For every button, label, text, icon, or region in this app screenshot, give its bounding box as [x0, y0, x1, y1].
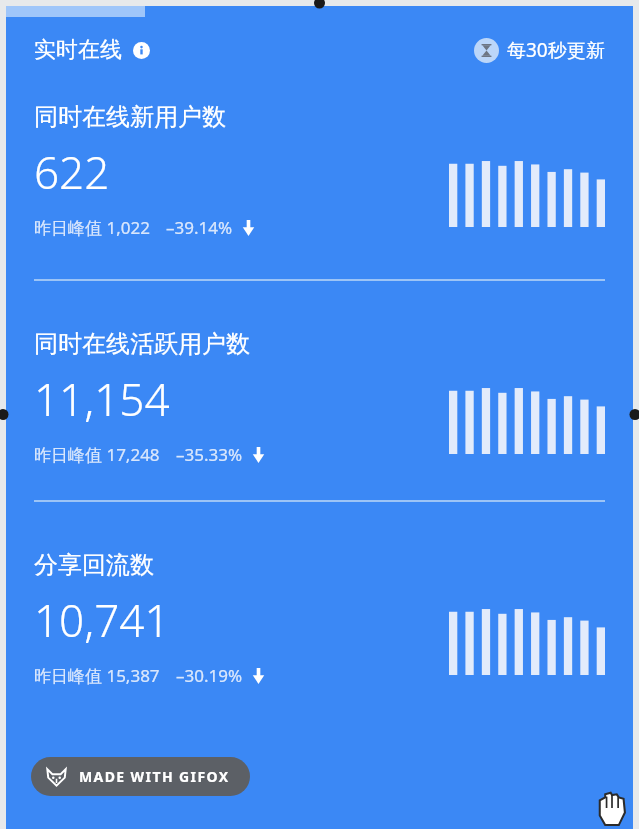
staticText: 实时在线: [34, 36, 122, 64]
staticText: 同时在线新用户数: [34, 102, 226, 132]
staticText: 分享回流数: [34, 550, 154, 580]
button[interactable]: 实时在线: [34, 36, 150, 64]
staticText: 11,154: [34, 369, 170, 429]
other: Info: [133, 42, 150, 59]
staticText: 10,741: [34, 590, 170, 650]
staticText: –39.14%: [166, 216, 233, 239]
staticText: –35.33%: [176, 443, 243, 466]
staticText: 622: [34, 142, 110, 202]
staticText: 同时在线活跃用户数: [34, 329, 250, 359]
button[interactable]: 分享回流数: [34, 550, 605, 687]
staticText: 昨日峰值 1,022: [34, 216, 150, 239]
staticText: MADE WITH GIFOX: [79, 767, 230, 786]
button[interactable]: 同时在线新用户数: [34, 102, 605, 239]
button[interactable]: 同时在线活跃用户数: [34, 329, 605, 466]
staticText: –30.19%: [176, 664, 243, 687]
staticText: 昨日峰值 17,248: [34, 443, 160, 466]
staticText: 每30秒更新: [507, 37, 605, 63]
button[interactable]: 每30秒更新: [474, 37, 605, 63]
staticText: 昨日峰值 15,387: [34, 664, 160, 687]
